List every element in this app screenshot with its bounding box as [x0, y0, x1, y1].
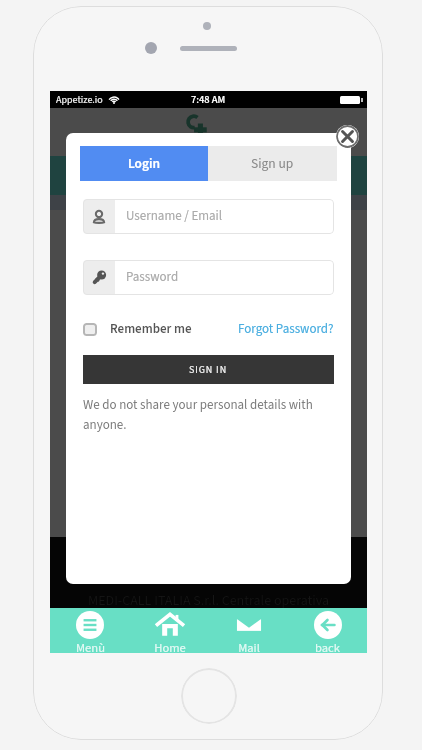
staticText: Password: [126, 268, 179, 287]
staticText: Login: [128, 154, 161, 173]
staticText: MEDI-CALL ITALIA S.r.l. Centrale operati…: [88, 591, 330, 611]
button[interactable]: Login: [80, 146, 208, 181]
staticText: back: [315, 639, 340, 653]
staticText: Forgot Password?: [238, 320, 334, 339]
staticText: Remember me: [110, 320, 192, 339]
button[interactable]: Menù: [50, 608, 130, 653]
button[interactable]: Sign up: [208, 146, 337, 181]
button[interactable]: Username / Email: [83, 199, 334, 234]
button[interactable]: Close: [336, 125, 359, 148]
staticText: Appetize.io: [56, 93, 103, 107]
button[interactable]: Password: [83, 260, 334, 295]
staticText: 7:48 AM: [191, 92, 226, 107]
button[interactable]: Remember me: [83, 320, 192, 339]
staticText: Menù: [76, 639, 105, 653]
staticText: SIGN IN: [189, 363, 228, 377]
button[interactable]: Mail: [209, 608, 288, 653]
staticText: Username / Email: [126, 207, 223, 226]
button[interactable]: SIGN IN: [83, 355, 334, 384]
button[interactable]: Home: [130, 608, 209, 653]
staticText: We do not share your personal details wi…: [83, 396, 313, 434]
button[interactable]: Forgot Password?: [238, 320, 334, 339]
staticText: Sign up: [251, 154, 294, 173]
button[interactable]: back: [288, 608, 367, 653]
staticText: Mail: [238, 639, 260, 653]
staticText: Home: [154, 639, 186, 653]
